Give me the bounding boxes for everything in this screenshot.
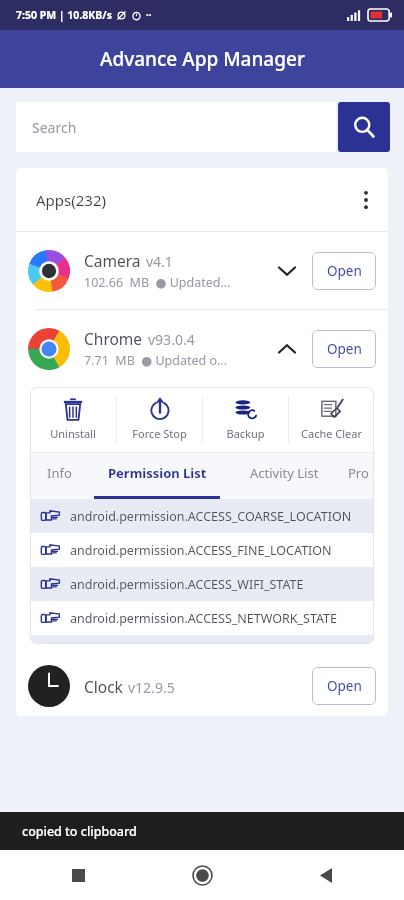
button[interactable]: Collapse <box>268 330 306 368</box>
staticText: Pro <box>348 464 369 482</box>
button[interactable]: Cache Clear <box>289 387 374 452</box>
staticText: copied to clipboard <box>22 823 137 840</box>
button[interactable]: Open <box>312 667 376 705</box>
button[interactable]: Pro <box>342 453 374 499</box>
button[interactable]: Force Stop <box>117 387 202 452</box>
staticText: Chrome <box>84 328 143 349</box>
staticText: Permission List <box>108 464 207 482</box>
button[interactable]: Activity List <box>226 453 342 499</box>
button[interactable]: Backup <box>203 387 288 452</box>
staticText: Open <box>327 340 362 358</box>
button[interactable]: Open <box>312 330 376 368</box>
button[interactable]: Home <box>182 855 222 895</box>
button[interactable]: More options <box>344 178 388 222</box>
staticText: v93.0.4 <box>148 330 195 349</box>
staticText: android.permission.ACCESS_NETWORK_STATE <box>70 610 338 627</box>
button[interactable]: Chrome <box>16 310 388 387</box>
staticText: android.permission.ACCESS_COARSE_LOCATIO… <box>70 508 352 525</box>
staticText: Camera <box>84 250 141 271</box>
button[interactable]: android.permission.ACCESS_NETWORK_STATE <box>30 601 374 635</box>
staticText: Apps(232) <box>36 190 106 210</box>
button[interactable]: android.permission.ACCESS_FINE_LOCATION <box>30 533 374 567</box>
staticText: android.permission.ACCESS_FINE_LOCATION <box>70 542 332 559</box>
staticText: 102.66 MB ● Updated... <box>84 274 231 291</box>
button[interactable]: Back <box>306 855 346 895</box>
staticText: Activity List <box>250 464 319 482</box>
button[interactable]: android.permission.ACCESS_WIFI_STATE <box>30 567 374 601</box>
staticText: 7.71 MB ● Updated o... <box>84 352 228 369</box>
button[interactable]: Search <box>16 102 336 152</box>
staticText: Clock <box>84 676 123 697</box>
staticText: Info <box>47 464 72 482</box>
staticText: Advance App Manager <box>100 46 305 72</box>
button[interactable]: android.permission.ACCESS_COARSE_LOCATIO… <box>30 499 374 533</box>
button[interactable]: Clock <box>16 656 388 716</box>
button[interactable]: Uninstall <box>30 387 116 452</box>
staticText: Open <box>327 677 362 695</box>
staticText: Open <box>327 262 362 280</box>
staticText: Search <box>32 118 77 137</box>
staticText: android.permission.ACCESS_WIFI_STATE <box>70 576 304 593</box>
staticText: v4.1 <box>146 252 173 271</box>
staticText: v12.9.5 <box>128 678 175 697</box>
staticText: ·· <box>146 8 152 22</box>
button[interactable]: Expand <box>268 252 306 290</box>
button[interactable]: Camera <box>16 232 388 309</box>
staticText: Cache Clear <box>301 426 362 441</box>
staticText: Force Stop <box>132 426 187 441</box>
button[interactable]: Info <box>30 453 88 499</box>
button[interactable]: Recents <box>58 855 98 895</box>
staticText: 7:50 PM | 10.8KB/s <box>16 8 112 22</box>
button[interactable]: Open <box>312 252 376 290</box>
button[interactable]: Permission List <box>88 453 226 499</box>
staticText: Uninstall <box>50 426 96 441</box>
button[interactable]: Search <box>338 102 390 152</box>
staticText: Backup <box>226 426 265 441</box>
